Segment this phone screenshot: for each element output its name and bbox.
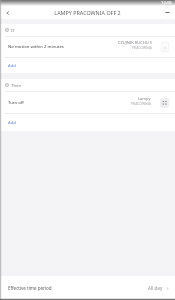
staticText: Then: [11, 82, 22, 88]
staticText: LAMPY PRACOWNIA OFF 2: [54, 9, 121, 16]
staticText: No motion within 2 minutes: [8, 44, 64, 50]
button[interactable]: Add: [0, 114, 175, 131]
button[interactable]: Back: [4, 9, 12, 17]
staticText: Effective time period: [8, 285, 52, 291]
button[interactable]: No motion within 2 minutes: [0, 37, 175, 57]
staticText: CZUJNIK RUCHU 3: [118, 40, 152, 45]
staticText: 12:56: [161, 0, 172, 6]
button[interactable]: Add: [0, 58, 175, 73]
staticText: Lampy: [138, 96, 151, 101]
button[interactable]: More options: [163, 8, 172, 17]
staticText: Turn off: [8, 100, 24, 106]
staticText: PRACOWNIA: [132, 45, 152, 50]
staticText: Add: [8, 63, 16, 69]
staticText: Add: [8, 120, 16, 126]
staticText: All day: [148, 285, 163, 291]
button[interactable]: Turn off: [0, 92, 175, 113]
staticText: PRACOWNIA: [131, 101, 151, 106]
button[interactable]: Effective time period: [0, 276, 175, 300]
staticText: IF: [11, 27, 15, 33]
